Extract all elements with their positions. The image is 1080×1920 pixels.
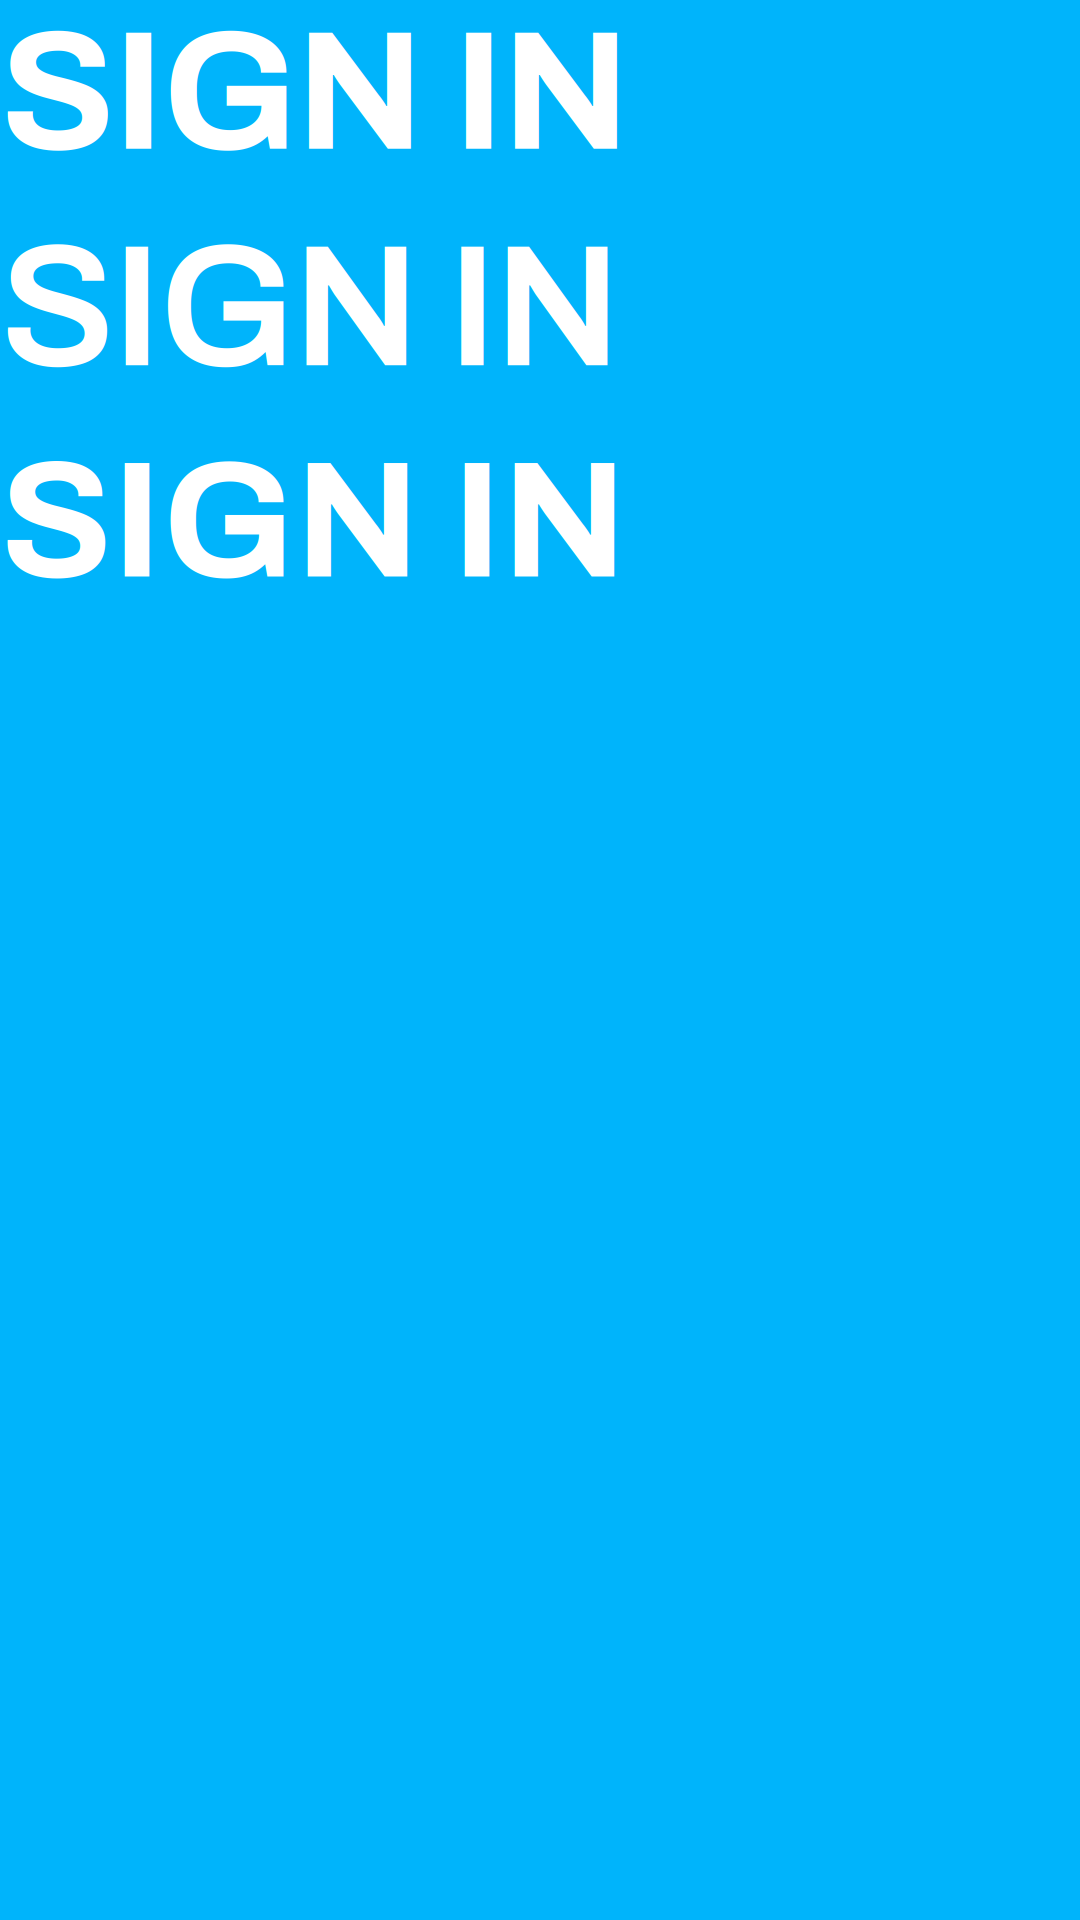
staticText: SIGN IN — [0, 214, 620, 401]
staticText: SIGN IN — [0, 0, 630, 184]
staticText: SIGN IN — [0, 431, 627, 611]
